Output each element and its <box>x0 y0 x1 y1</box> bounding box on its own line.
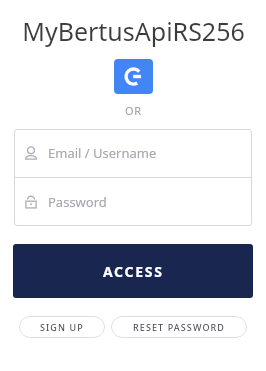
staticText: RESET PASSWORD <box>133 321 225 333</box>
staticText: SIGN UP <box>40 321 84 333</box>
button[interactable]: Password <box>14 178 252 226</box>
button[interactable]: Email / Username <box>14 129 252 177</box>
button[interactable]: Sign in with Google <box>114 59 153 94</box>
button[interactable]: SIGN UP <box>19 316 105 338</box>
staticText: MyBertusApiRS256 <box>22 14 245 48</box>
staticText: Password <box>48 193 107 211</box>
staticText: ACCESS <box>103 262 164 281</box>
staticText: Email / Username <box>48 144 157 162</box>
button[interactable]: ACCESS <box>13 244 253 298</box>
staticText: OR <box>125 103 142 118</box>
button[interactable]: RESET PASSWORD <box>111 316 247 338</box>
